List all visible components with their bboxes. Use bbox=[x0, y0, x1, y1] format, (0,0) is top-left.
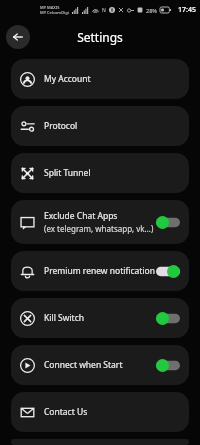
staticText: Contact Us bbox=[44, 406, 88, 418]
staticText: 28% bbox=[146, 7, 157, 14]
staticText: (ex telegram, whatsapp, vk…) bbox=[44, 223, 154, 234]
button[interactable]: Connect when Start bbox=[11, 345, 189, 385]
staticText: MY MAXIS bbox=[40, 5, 60, 10]
button[interactable]: Toggle bbox=[156, 216, 180, 229]
button[interactable]: Split Tunnel bbox=[11, 153, 189, 193]
staticText: My Account bbox=[44, 73, 91, 85]
button[interactable]: Back bbox=[6, 25, 30, 49]
staticText: Premium renew notification bbox=[44, 265, 156, 277]
staticText: Exclude Chat Apps bbox=[44, 210, 118, 222]
button[interactable]: Exclude Chat Apps bbox=[11, 200, 189, 244]
staticText: MY CelcomDigi bbox=[40, 10, 69, 15]
button[interactable]: My Account bbox=[11, 59, 189, 99]
button[interactable]: Toggle bbox=[156, 359, 180, 372]
button[interactable]: Toggle bbox=[156, 265, 180, 278]
staticText: Split Tunnel bbox=[44, 167, 91, 179]
button[interactable]: Toggle bbox=[156, 312, 180, 325]
staticText: Protocol bbox=[44, 120, 78, 132]
staticText: Kill Switch bbox=[44, 312, 84, 324]
button[interactable]: Protocol bbox=[11, 106, 189, 146]
button[interactable]: Premium renew notification bbox=[11, 251, 189, 291]
button[interactable]: Kill Switch bbox=[11, 298, 189, 338]
button[interactable]: Contact Us bbox=[11, 392, 189, 432]
staticText: Settings bbox=[77, 29, 123, 45]
staticText: 17:45 bbox=[178, 5, 196, 15]
staticText: N bbox=[102, 7, 106, 14]
staticText: Connect when Start bbox=[44, 359, 123, 371]
